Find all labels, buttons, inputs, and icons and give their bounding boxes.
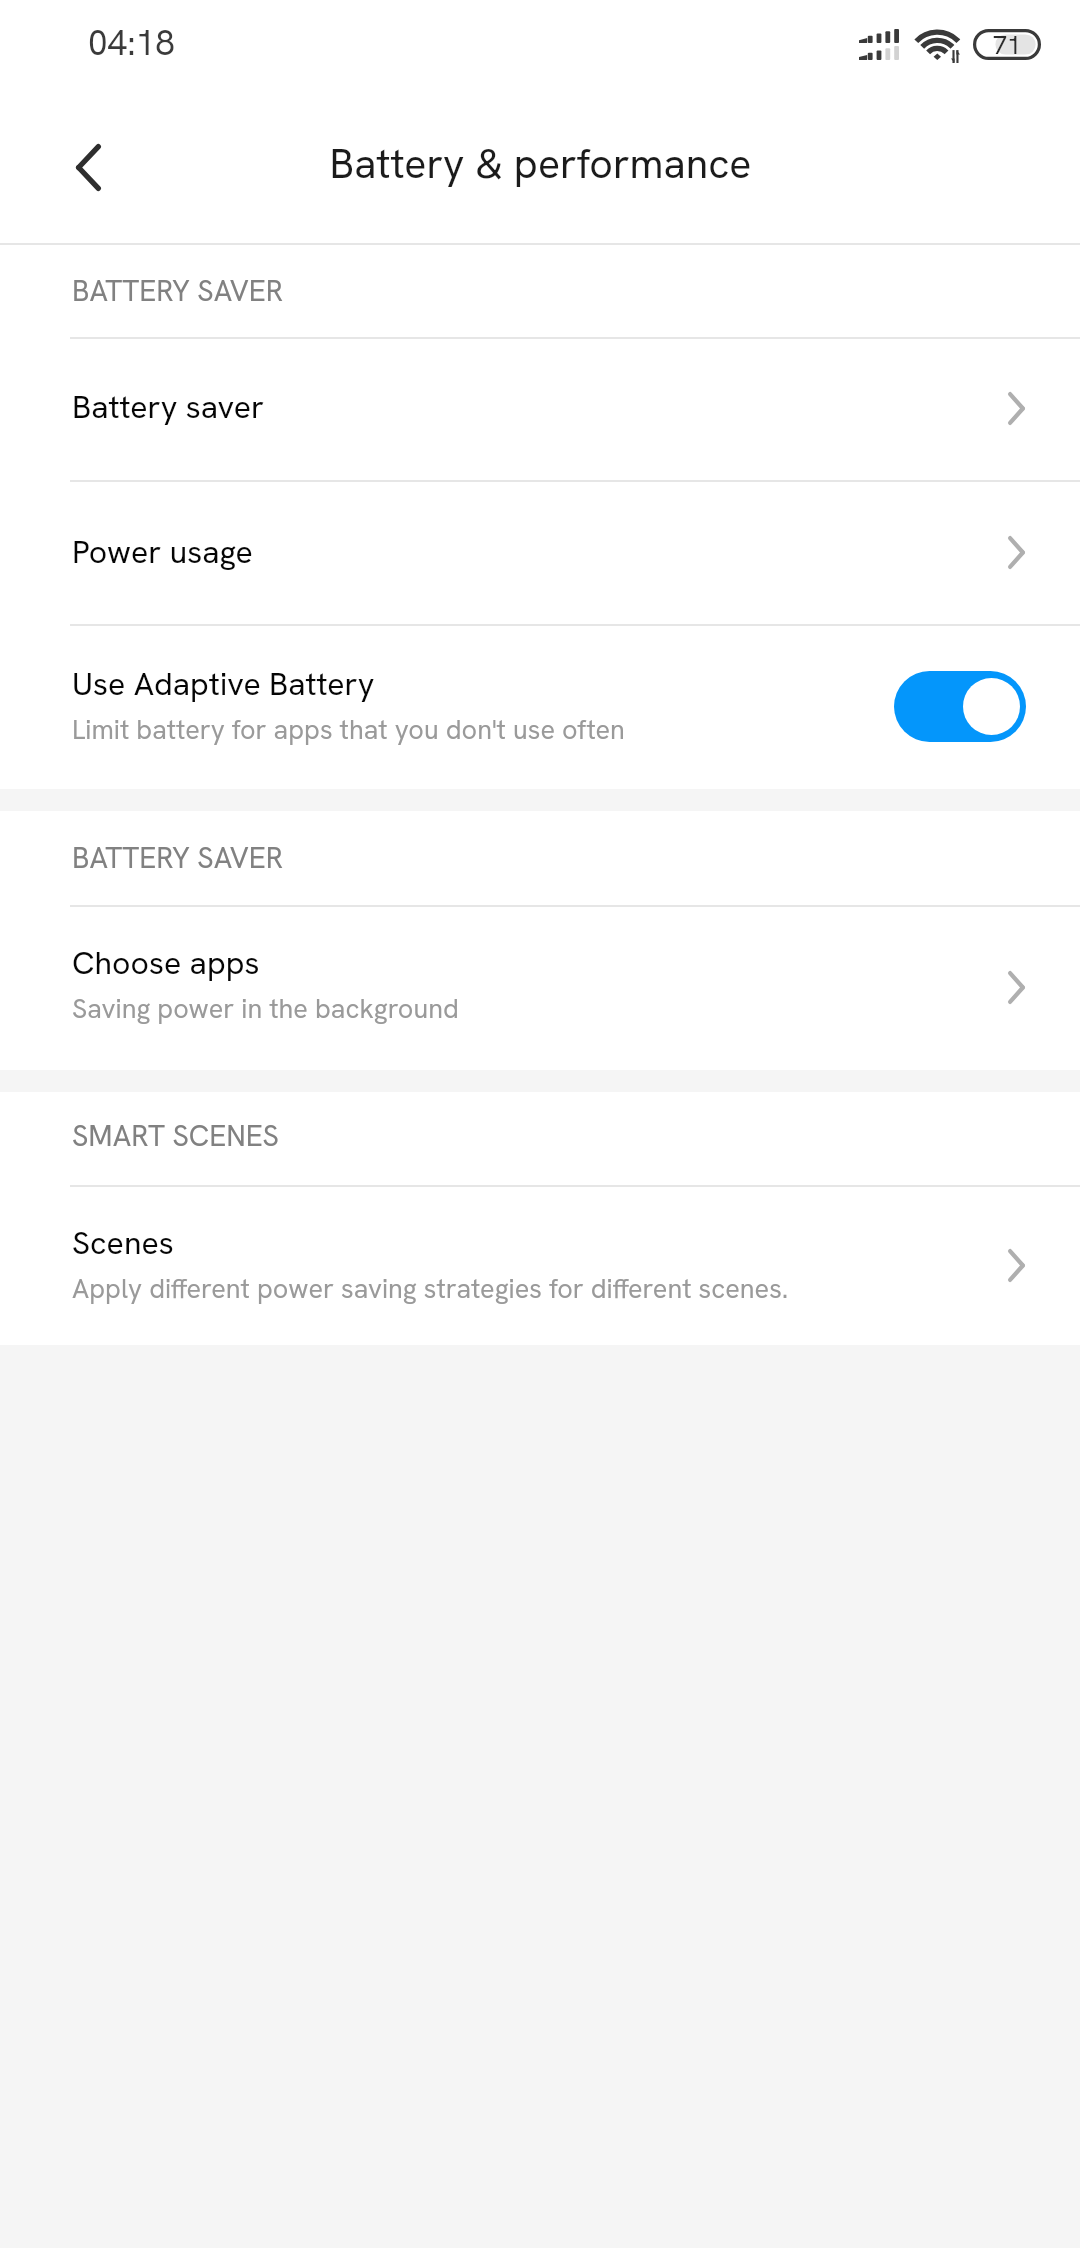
button[interactable]: Scenes	[0, 1185, 1080, 1345]
button[interactable]: Choose apps	[0, 905, 1080, 1070]
staticText: Limit battery for apps that you don't us…	[72, 712, 625, 747]
staticText: BATTERY SAVER	[72, 272, 284, 310]
staticText: SMART SCENES	[72, 1117, 279, 1155]
staticText: Battery saver	[72, 386, 265, 428]
staticText: 71	[993, 29, 1022, 60]
button[interactable]: Back	[0, 88, 176, 243]
button[interactable]: Use Adaptive Battery toggle	[894, 671, 1026, 742]
staticText: BATTERY SAVER	[72, 839, 284, 877]
staticText: Power usage	[72, 531, 253, 573]
button[interactable]: Power usage	[0, 480, 1080, 624]
staticText: Choose apps	[72, 942, 260, 984]
staticText: Battery & performance	[329, 137, 752, 190]
button[interactable]: Use Adaptive Battery	[0, 624, 1080, 789]
button[interactable]: Battery saver	[0, 337, 1080, 480]
staticText: Saving power in the background	[72, 991, 459, 1026]
staticText: 04:18	[88, 20, 175, 66]
staticText: Apply different power saving strategies …	[72, 1271, 789, 1306]
staticText: Use Adaptive Battery	[72, 663, 375, 705]
staticText: Scenes	[72, 1222, 174, 1264]
